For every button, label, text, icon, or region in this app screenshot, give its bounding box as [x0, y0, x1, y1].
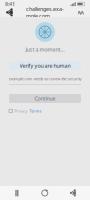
staticText: Just a moment…	[25, 46, 64, 53]
button[interactable]: Bookmarks	[9, 187, 25, 199]
staticText: Terms	[30, 108, 42, 114]
staticText: Privacy	[15, 108, 28, 114]
staticText: Verify you are human	[19, 62, 70, 69]
button[interactable]: Continue	[9, 94, 81, 103]
staticText: 9:41	[5, 0, 15, 8]
button[interactable]: Page settings	[74, 8, 87, 17]
button[interactable]: Share	[65, 187, 81, 199]
staticText: Continue	[34, 95, 55, 102]
button[interactable]: Share	[3, 8, 16, 17]
button[interactable]: Reload	[37, 187, 53, 199]
staticText: example.com needs to review the security	[8, 76, 81, 81]
staticText: challenges.example.com	[26, 5, 64, 20]
staticText: AA	[77, 9, 83, 16]
button[interactable]: Privacy	[0, 108, 90, 114]
